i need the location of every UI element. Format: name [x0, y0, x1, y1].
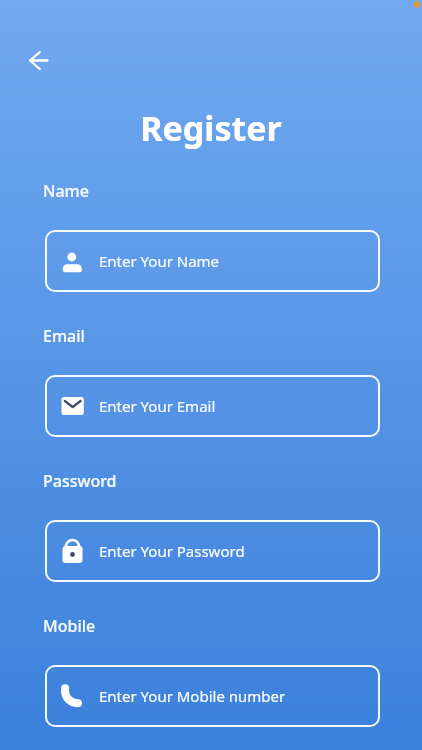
button[interactable]: Enter Your Mobile number [45, 665, 380, 727]
staticText: Password [43, 470, 117, 492]
staticText: Mobile [43, 615, 96, 637]
staticText: Name [43, 180, 89, 202]
staticText: Email [43, 325, 85, 347]
button[interactable] [22, 44, 56, 78]
staticText: Enter Your Mobile number [99, 686, 286, 706]
staticText: Register [0, 105, 422, 151]
button[interactable]: Enter Your Password [45, 520, 380, 582]
staticText: Enter Your Name [99, 251, 220, 271]
button[interactable]: Enter Your Email [45, 375, 380, 437]
staticText: Enter Your Password [99, 541, 245, 561]
staticText: Enter Your Email [99, 396, 216, 416]
button[interactable]: Enter Your Name [45, 230, 380, 292]
